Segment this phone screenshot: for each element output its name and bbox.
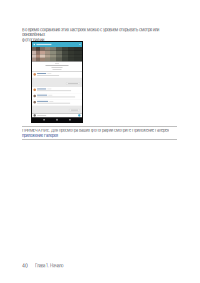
staticText: ПРИМЕЧАНИЕ. Для просмотра ваших фотограф… [22, 128, 169, 133]
staticText: 40 [22, 263, 28, 268]
staticText: Во время сохранения этих настроек можно … [22, 27, 159, 37]
staticText: фотографии [22, 38, 44, 42]
staticText: Глава 1. Начало [35, 263, 64, 268]
staticText: приложение Галерея [22, 133, 58, 138]
